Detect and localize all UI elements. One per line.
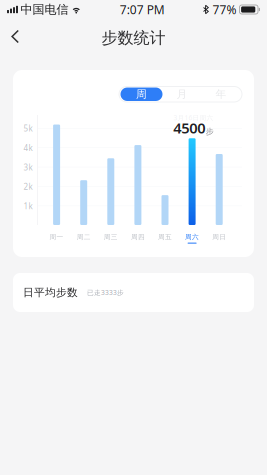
staticText: 周五 (158, 233, 172, 241)
button[interactable]: 年 (201, 87, 240, 101)
staticText: 77% (212, 1, 236, 17)
staticText: 周日 (212, 233, 226, 241)
button[interactable]: Back (0, 22, 33, 51)
staticText: 5k (23, 123, 32, 134)
staticText: 4500 (173, 118, 205, 137)
button[interactable]: 月 (162, 87, 201, 101)
staticText: 周四 (131, 233, 145, 241)
staticText: 步数统计 (101, 28, 165, 48)
staticText: 3k (23, 162, 32, 173)
staticText: 周一 (50, 233, 64, 241)
staticText: 1k (23, 201, 32, 211)
staticText: 周六 (185, 233, 199, 241)
staticText: 3月16日周六 (174, 113, 214, 122)
staticText: 已走3333步 (87, 288, 124, 297)
staticText: 4k (23, 143, 32, 153)
staticText: 日平均步数 (23, 286, 78, 299)
staticText: 周二 (77, 233, 91, 241)
staticText: 周三 (104, 233, 118, 241)
staticText: 步 (206, 127, 214, 136)
staticText: 月 (176, 88, 187, 101)
staticText: 7:07 PM (120, 1, 165, 17)
staticText: 中国电信 (20, 2, 68, 17)
staticText: 2k (23, 181, 32, 192)
staticText: 周 (136, 88, 147, 101)
staticText: 年 (215, 88, 226, 101)
button[interactable]: 周 (120, 87, 162, 101)
